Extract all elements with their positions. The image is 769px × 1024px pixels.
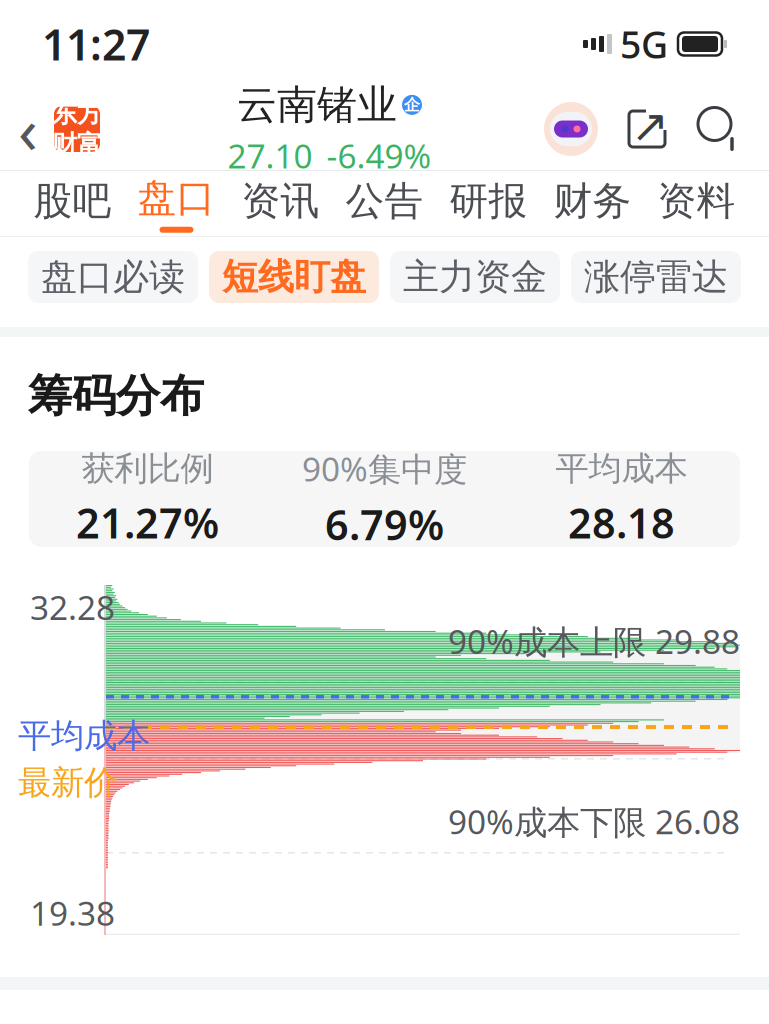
staticText: ‹ [18, 86, 38, 171]
button[interactable]: 资讯 [228, 171, 332, 236]
button[interactable]: 盘口必读 [28, 251, 198, 303]
staticText: ↗ [631, 100, 669, 152]
staticText: 资讯 [241, 177, 319, 225]
button[interactable]: 股吧 [20, 171, 124, 236]
staticText: 19.38 [30, 891, 115, 935]
staticText: 短线盯盘 [222, 255, 366, 299]
staticText: 90%成本上限 29.88 [448, 619, 740, 663]
staticText: 90%集中度 [302, 446, 467, 491]
staticText: 21.27% [76, 495, 219, 550]
staticText: 云南锗业 [237, 80, 397, 129]
staticText: 资料 [657, 177, 735, 225]
button[interactable]: 资料 [644, 171, 748, 236]
staticText: 东方 [52, 98, 102, 129]
staticText: 盘口必读 [41, 255, 185, 299]
staticText: 5G [620, 19, 668, 69]
button[interactable]: Back [0, 89, 118, 169]
button[interactable]: 涨停雷达 [571, 251, 741, 303]
button[interactable]: 财务 [540, 171, 644, 236]
staticText: 平均成本 [555, 448, 687, 489]
staticText: 研报 [449, 177, 527, 225]
staticText: 27.10 [227, 133, 312, 178]
staticText: 财务 [553, 177, 631, 225]
staticText: 筹码分布 [28, 369, 204, 423]
staticText: 主力资金 [403, 255, 547, 299]
staticText: 获利比例 [81, 448, 213, 489]
button[interactable]: Search [693, 101, 745, 157]
staticText: 28.18 [568, 495, 675, 550]
staticText: 涨停雷达 [584, 255, 728, 299]
staticText: 最新价 [18, 762, 117, 803]
staticText: 90%成本下限 26.08 [448, 799, 740, 844]
staticText: -6.49% [326, 133, 431, 178]
button[interactable]: 主力资金 [390, 251, 560, 303]
staticText: 公告 [345, 177, 423, 225]
button[interactable]: 短线盯盘 [209, 251, 379, 303]
staticText: 11:27 [42, 16, 150, 72]
button[interactable]: 公告 [332, 171, 436, 236]
button[interactable]: Share [621, 101, 673, 157]
staticText: 企 [404, 95, 420, 115]
button[interactable]: 盘口 [124, 171, 228, 236]
staticText: 平均成本 [18, 715, 150, 756]
staticText: 股吧 [33, 177, 111, 225]
button[interactable]: AI assistant [541, 99, 601, 159]
staticText: 财富 [52, 129, 102, 160]
staticText: 32.28 [30, 585, 115, 629]
staticText: 盘口 [137, 174, 215, 222]
button[interactable]: 研报 [436, 171, 540, 236]
staticText: 6.79% [325, 497, 444, 552]
